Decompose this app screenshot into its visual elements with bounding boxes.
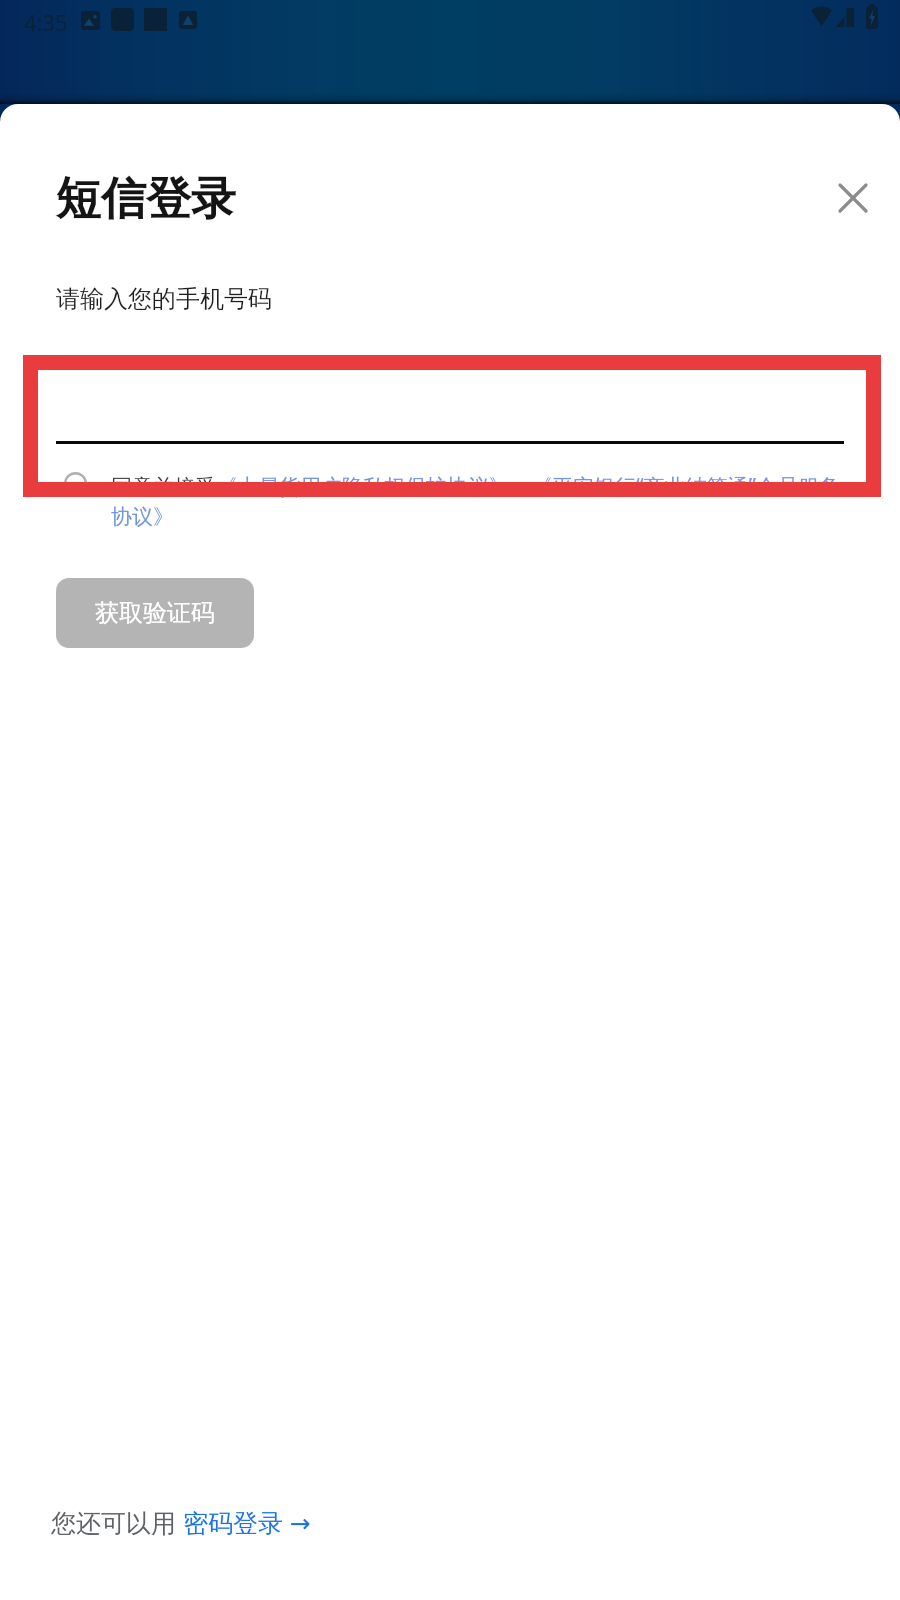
button[interactable]: Phone number input bbox=[56, 373, 844, 444]
staticText: 您还可以用 bbox=[51, 1505, 183, 1539]
staticText: 密码登录 → bbox=[183, 1505, 311, 1539]
staticText: 获取验证码 bbox=[95, 598, 215, 628]
staticText: 同意并接受《上晟货用户隐私权保护协议》、《平安银行“商业结算通”会员服务协议》 bbox=[111, 472, 851, 531]
staticText: 请输入您的手机号码 bbox=[56, 284, 272, 314]
button[interactable]: 获取验证码 bbox=[56, 578, 254, 648]
button[interactable]: Close bbox=[822, 167, 883, 228]
staticText: 4:35 bbox=[24, 7, 68, 37]
staticText: 短信登录 bbox=[56, 171, 236, 228]
button[interactable]: 您还可以用 bbox=[51, 1505, 311, 1539]
button[interactable]: 同意并接受《上晟货用户隐私权保护协议》、《平安银行“商业结算通”会员服务协议》 bbox=[56, 472, 851, 531]
